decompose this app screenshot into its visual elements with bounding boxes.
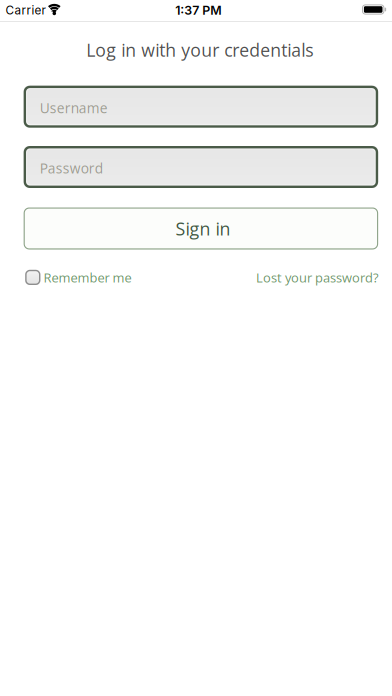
staticText: Log in with your credentials (86, 38, 313, 62)
staticText: Carrier (5, 3, 45, 17)
staticText: Lost your password? (256, 269, 379, 286)
button[interactable]: Lost your password? (256, 269, 379, 286)
button[interactable]: Sign in (24, 207, 378, 249)
staticText: Password (40, 159, 103, 178)
secureTextField[interactable]: Password (40, 159, 378, 178)
staticText: 1:37 PM (175, 3, 221, 18)
staticText: Remember me (44, 269, 132, 286)
textField[interactable]: Username (40, 98, 378, 117)
staticText: Username (40, 98, 108, 117)
staticText: Sign in (175, 216, 230, 241)
button[interactable]: Remember me (25, 269, 132, 286)
